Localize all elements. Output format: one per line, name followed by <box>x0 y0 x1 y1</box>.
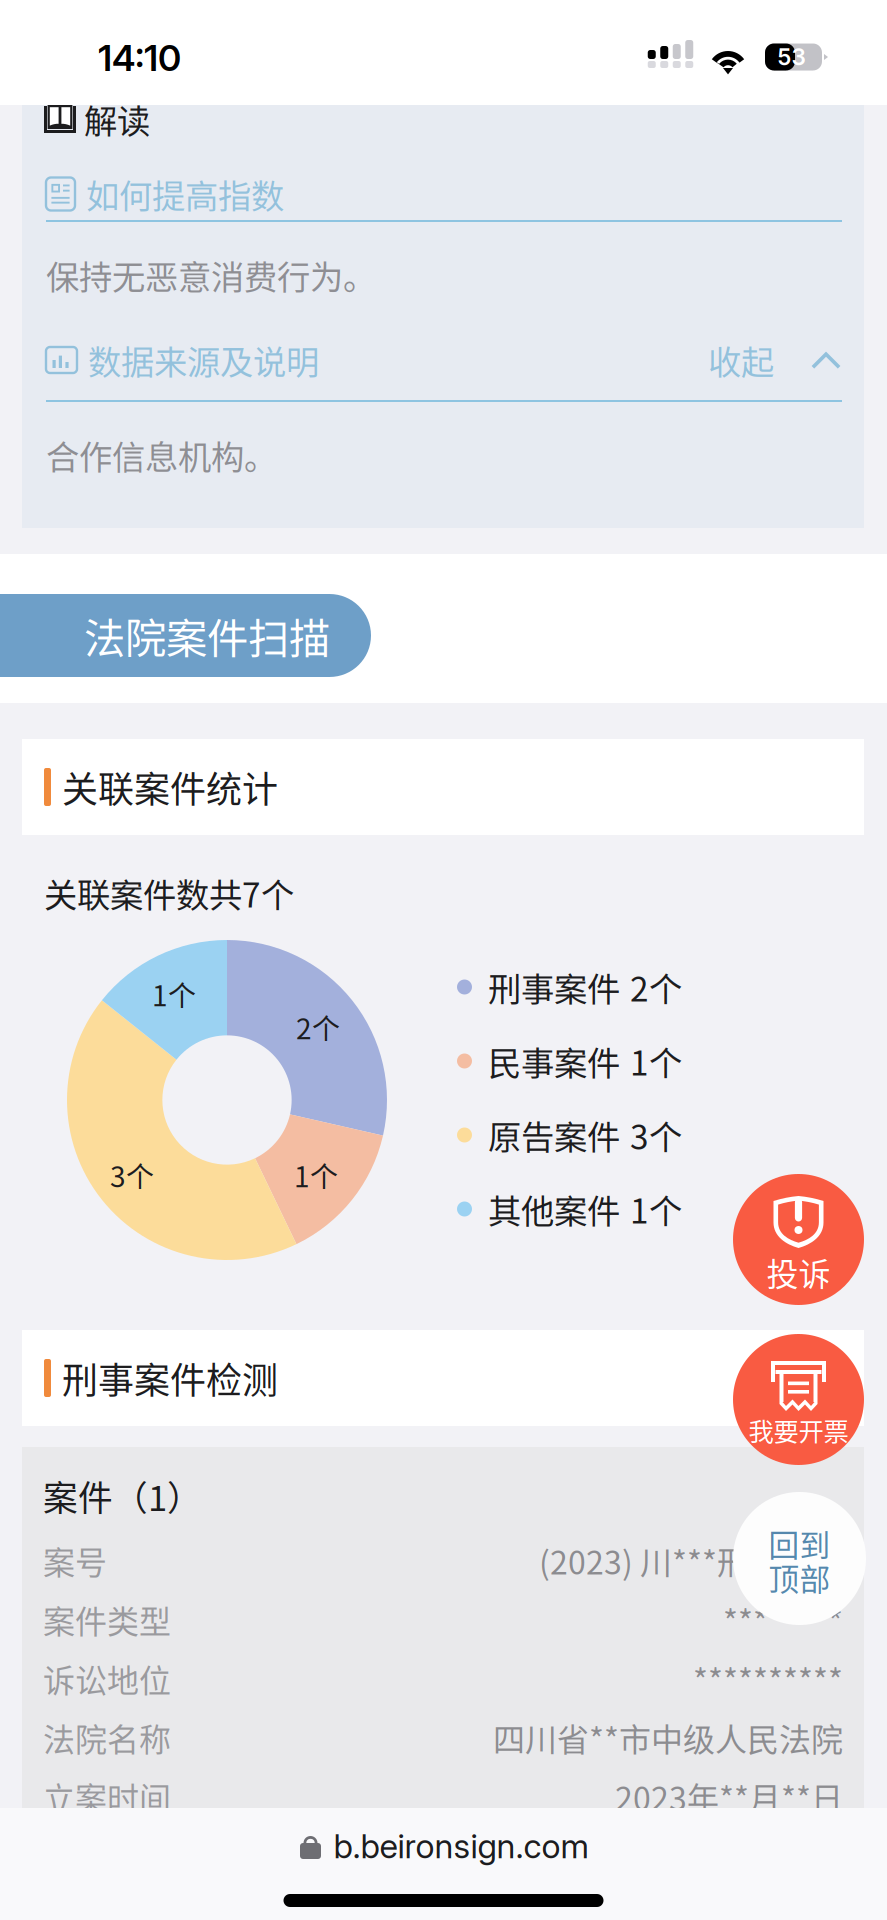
staticText: 2023年**月**日 <box>615 1773 843 1820</box>
button[interactable]: b.beironsign.com <box>298 1824 588 1868</box>
staticText: 诉讼地位 <box>43 1655 171 1702</box>
button[interactable]: 如何提高指数 <box>46 168 842 220</box>
staticText: 刑事案件检测 <box>62 1352 278 1404</box>
staticText: 顶部 <box>768 1555 830 1600</box>
staticText: 法院案件扫描 <box>84 606 330 665</box>
staticText: 案号 <box>43 1537 107 1584</box>
staticText: 关联案件统计 <box>62 761 278 813</box>
staticText: 其他案件 <box>488 1185 620 1233</box>
staticText: 3个 <box>110 1155 154 1195</box>
staticText: 刑事案件 <box>488 963 620 1011</box>
staticText: 1个 <box>630 1037 682 1085</box>
staticText: 14:10 <box>98 36 181 80</box>
staticText: 民事案件 <box>488 1037 620 1085</box>
staticText: ********** <box>693 1655 843 1702</box>
staticText: 投诉 <box>766 1249 830 1295</box>
staticText: 2个 <box>630 963 682 1011</box>
staticText: 我要开票 <box>748 1412 848 1448</box>
staticText: 2个 <box>296 1007 340 1047</box>
staticText: 数据来源及说明 <box>88 336 319 384</box>
staticText: 3个 <box>630 1111 682 1159</box>
staticText: (2023) 川***刑初**号 <box>539 1537 843 1584</box>
staticText: 1个 <box>152 974 196 1014</box>
staticText: 回到 <box>768 1521 830 1566</box>
button[interactable]: 我要开票 <box>733 1334 864 1465</box>
staticText: 解读 <box>84 95 150 143</box>
staticText: 立案时间 <box>43 1773 171 1820</box>
staticText: 案件（1） <box>43 1471 202 1521</box>
staticText: 案件类型 <box>43 1596 171 1643</box>
staticText: 53 <box>777 43 805 71</box>
staticText: 1个 <box>294 1155 338 1195</box>
staticText: 四川省**市中级人民法院 <box>493 1714 843 1761</box>
staticText: 如何提高指数 <box>86 170 284 218</box>
staticText: b.beironsign.com <box>333 1826 588 1866</box>
staticText: 合作信息机构。 <box>46 431 277 479</box>
button[interactable]: 法院案件扫描 <box>0 594 371 677</box>
staticText: 关联案件数共7个 <box>44 869 294 917</box>
staticText: 法院名称 <box>43 1714 171 1761</box>
staticText: 收起 <box>708 336 774 384</box>
button[interactable]: 回到顶部 <box>733 1492 866 1625</box>
button[interactable]: 数据来源及说明 <box>46 334 842 386</box>
button[interactable]: 投诉 <box>733 1174 864 1305</box>
staticText: 保持无恶意消费行为。 <box>46 251 376 299</box>
staticText: 原告案件 <box>488 1111 620 1159</box>
staticText: 1个 <box>630 1185 682 1233</box>
staticText: ******** <box>723 1596 843 1643</box>
